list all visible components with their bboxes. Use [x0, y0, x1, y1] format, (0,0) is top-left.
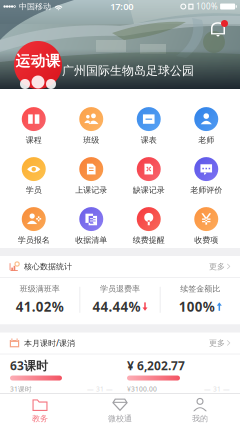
- staticText: 44.44%: [92, 298, 140, 315]
- staticText: 学员报名: [18, 235, 50, 245]
- staticText: 上课记录: [75, 185, 107, 195]
- staticText: 课表: [141, 135, 157, 145]
- staticText: 更多: [209, 262, 225, 271]
- staticText: 100%: [196, 1, 218, 12]
- staticText: 17:00: [110, 0, 133, 13]
- staticText: 本月课时/课消: [24, 338, 75, 348]
- staticText: 中国移动: [19, 2, 51, 11]
- button[interactable]: 学员报名: [5, 208, 62, 244]
- staticText: 续签金额比: [180, 284, 220, 294]
- button[interactable]: 核心数据统计: [0, 256, 240, 278]
- staticText: 学员退费率: [100, 284, 140, 294]
- staticText: 更多: [209, 338, 225, 348]
- staticText: 核心数据统计: [24, 262, 72, 271]
- staticText: 31课时: [10, 384, 32, 393]
- button[interactable]: 班级: [62, 108, 120, 144]
- button[interactable]: 续费提醒: [120, 208, 177, 244]
- staticText: ¥3100.00: [127, 384, 157, 393]
- button[interactable]: 老师评价: [177, 158, 235, 194]
- staticText: 缺课记录: [133, 185, 165, 195]
- button[interactable]: Notifications: [202, 14, 234, 46]
- staticText: 教务: [32, 414, 48, 423]
- button[interactable]: 收费项: [177, 208, 235, 244]
- staticText: 续费提醒: [133, 235, 165, 245]
- button[interactable]: 缺课记录: [120, 158, 177, 194]
- button[interactable]: 学员: [5, 158, 62, 194]
- button[interactable]: 上课记录: [62, 158, 120, 194]
- button[interactable]: 本月课时/课消: [0, 332, 240, 354]
- staticText: 我的: [192, 414, 208, 423]
- staticText: 老师: [198, 135, 214, 145]
- button[interactable]: 老师: [177, 108, 235, 144]
- staticText: 41.02%: [16, 298, 64, 315]
- staticText: 收据清单: [75, 235, 107, 245]
- button[interactable]: 课表: [120, 108, 177, 144]
- staticText: 微校通: [108, 414, 132, 423]
- staticText: — 31 —: [204, 384, 230, 393]
- button[interactable]: 课程: [5, 108, 62, 144]
- staticText: 课程: [26, 135, 42, 145]
- button[interactable]: 我的: [160, 394, 240, 426]
- button[interactable]: 教务: [0, 394, 80, 426]
- staticText: ¥ 6,202.77: [127, 358, 185, 373]
- staticText: 学员: [26, 185, 42, 195]
- staticText: 63课时: [10, 358, 48, 373]
- button[interactable]: 微校通: [80, 394, 160, 426]
- staticText: 广州国际生物岛足球公园: [62, 63, 194, 78]
- staticText: 运动课: [15, 52, 60, 70]
- staticText: 老师评价: [190, 185, 222, 195]
- staticText: — 31 —: [87, 384, 113, 393]
- staticText: 班级: [83, 135, 99, 145]
- button[interactable]: 收据清单: [62, 208, 120, 244]
- staticText: 收费项: [194, 235, 218, 245]
- staticText: 100%: [179, 298, 215, 315]
- staticText: 班级满班率: [20, 284, 60, 294]
